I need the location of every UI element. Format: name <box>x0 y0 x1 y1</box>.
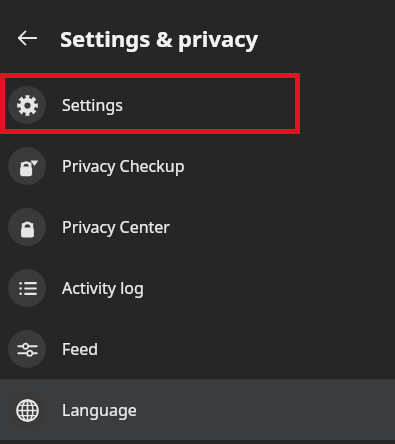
button[interactable]: Language <box>0 379 395 440</box>
staticText: Language <box>62 399 137 421</box>
staticText: Feed <box>62 338 99 360</box>
button[interactable]: Activity log <box>0 257 395 318</box>
button[interactable]: Settings <box>0 74 395 135</box>
button[interactable]: Feed <box>0 318 395 379</box>
button[interactable]: Privacy Center <box>0 196 395 257</box>
staticText: Privacy Center <box>62 216 170 238</box>
staticText: Settings & privacy <box>60 23 259 53</box>
button[interactable]: Back <box>7 18 47 58</box>
button[interactable]: Privacy Checkup <box>0 135 395 196</box>
staticText: Settings <box>62 94 123 116</box>
staticText: Privacy Checkup <box>62 155 185 177</box>
staticText: Activity log <box>62 277 144 299</box>
